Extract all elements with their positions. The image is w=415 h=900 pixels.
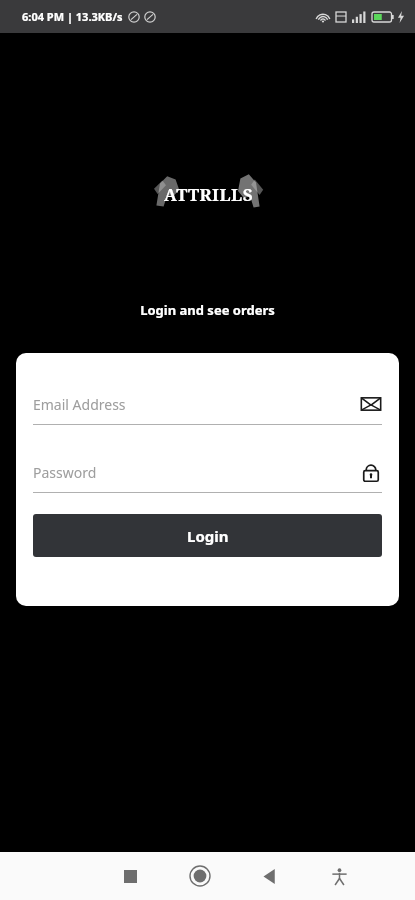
button[interactable]: Email Address bbox=[33, 393, 382, 425]
button[interactable]: Back bbox=[249, 856, 289, 896]
other: Email bbox=[360, 393, 382, 415]
button[interactable]: Accessibility bbox=[319, 856, 359, 896]
staticText: Login and see orders bbox=[140, 301, 275, 319]
button[interactable]: Password bbox=[33, 461, 382, 493]
other: Password bbox=[360, 461, 382, 483]
staticText: ATTRILLS bbox=[164, 183, 253, 206]
staticText: 6:04 PM | 13.3KB/s bbox=[22, 9, 123, 24]
staticText: Email Address bbox=[33, 395, 360, 414]
staticText: Login bbox=[187, 526, 229, 546]
button[interactable]: Recents bbox=[110, 856, 150, 896]
button[interactable]: Home bbox=[180, 856, 220, 896]
button[interactable]: Login bbox=[33, 514, 382, 557]
staticText: Password bbox=[33, 463, 360, 482]
